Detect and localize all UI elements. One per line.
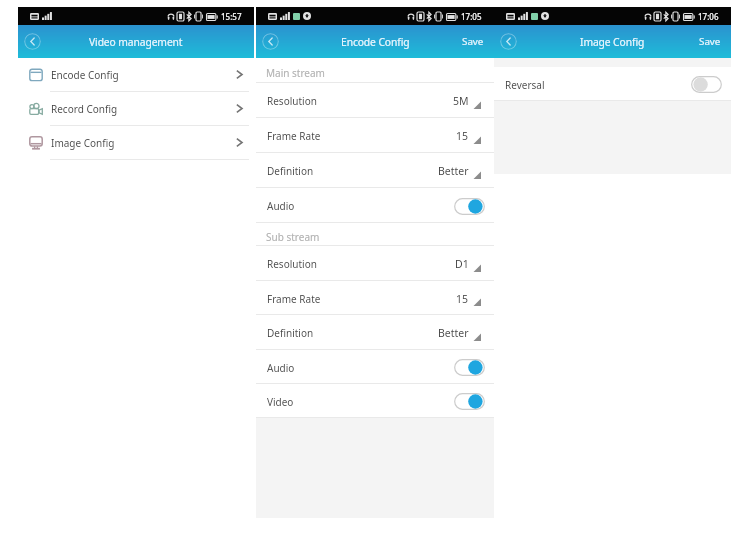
button[interactable]: Back	[500, 33, 517, 50]
button[interactable]: Save	[452, 25, 494, 58]
staticText: Sub stream	[266, 230, 320, 244]
staticText: Frame Rate	[267, 292, 321, 306]
staticText: D1	[455, 257, 469, 271]
button[interactable]: Frame Rate	[256, 281, 494, 314]
staticText: Frame Rate	[267, 129, 321, 143]
button[interactable]: Resolution	[256, 83, 494, 117]
button[interactable]: Audio	[256, 188, 494, 222]
staticText: Save	[462, 35, 484, 48]
staticText: Resolution	[267, 257, 317, 271]
button[interactable]: Definition	[256, 153, 494, 187]
button[interactable]: Save	[689, 25, 731, 58]
button[interactable]: Back	[24, 33, 41, 50]
staticText: Encode Config	[341, 35, 410, 49]
button[interactable]: Back	[262, 33, 279, 50]
staticText: Video management	[89, 35, 183, 49]
staticText: 15	[456, 129, 469, 143]
button[interactable]: Reversal	[494, 67, 731, 100]
staticText: Image Config	[580, 35, 645, 49]
staticText: 17:05	[461, 11, 482, 22]
staticText: 15:57	[221, 11, 242, 22]
staticText: Encode Config	[51, 68, 119, 82]
staticText: Record Config	[51, 102, 118, 116]
staticText: Definition	[267, 326, 314, 340]
button[interactable]: Video	[256, 384, 494, 417]
staticText: Better	[438, 326, 469, 340]
staticText: Video	[267, 395, 294, 409]
staticText: Main stream	[266, 66, 325, 80]
button[interactable]: Encode Config	[18, 58, 254, 91]
staticText: Definition	[267, 164, 314, 178]
staticText: Audio	[267, 199, 295, 213]
staticText: Audio	[267, 361, 295, 375]
button[interactable]: Record Config	[18, 92, 254, 125]
staticText: Image Config	[51, 136, 115, 150]
button[interactable]: Image Config	[18, 126, 254, 159]
staticText: Better	[438, 164, 469, 178]
button[interactable]: Audio	[256, 350, 494, 383]
staticText: 5M	[453, 94, 469, 108]
staticText: 15	[456, 292, 469, 306]
staticText: Resolution	[267, 94, 317, 108]
button[interactable]: Frame Rate	[256, 118, 494, 152]
button[interactable]: Resolution	[256, 246, 494, 280]
staticText: Reversal	[505, 78, 545, 92]
button[interactable]: Definition	[256, 315, 494, 349]
staticText: 17:06	[698, 11, 719, 22]
staticText: Save	[699, 35, 721, 48]
